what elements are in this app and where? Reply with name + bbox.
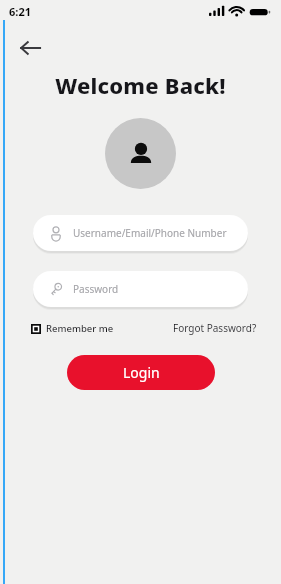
staticText: Password [73,282,119,296]
staticText: 6:21 [9,4,31,19]
staticText: Welcome Back! [55,70,226,100]
button[interactable]: Profile photo [105,118,176,189]
button[interactable]: Login [67,355,215,390]
button[interactable]: Remember me [31,320,114,337]
button[interactable]: Password [33,271,248,307]
button[interactable]: Back [10,28,50,68]
staticText: Remember me [46,322,114,335]
staticText: Login [123,363,160,382]
button[interactable]: Forgot Password? [171,319,259,337]
staticText: Username/Email/Phone Number [73,226,227,240]
staticText: Forgot Password? [173,321,257,335]
button[interactable]: Username/Email/Phone Number [33,215,248,251]
